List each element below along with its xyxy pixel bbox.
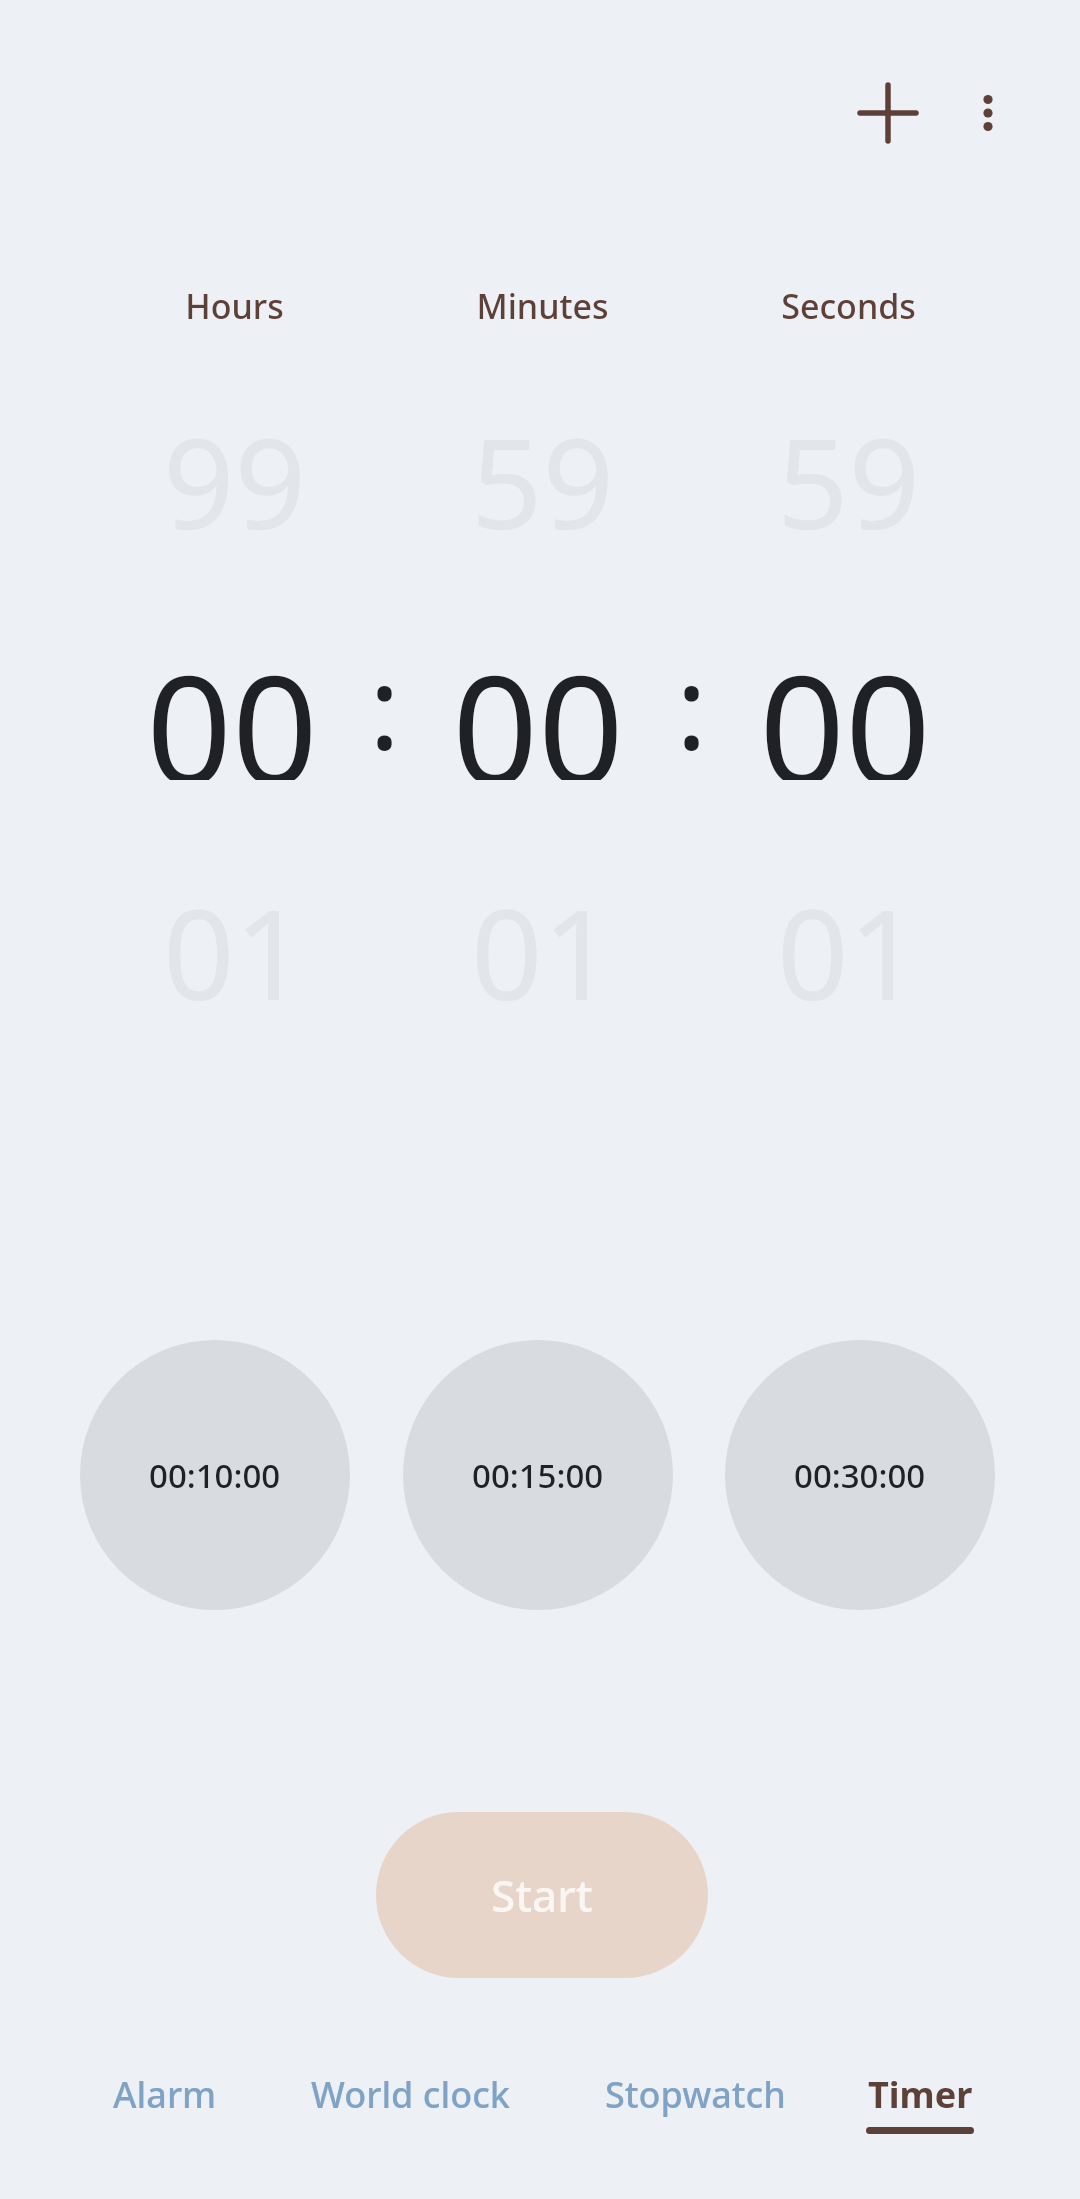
staticText: : [676, 625, 708, 780]
staticText: 00:10:00 [149, 1453, 281, 1498]
button[interactable]: 00 [695, 625, 995, 780]
staticText: 00:30:00 [794, 1453, 926, 1498]
button[interactable]: 59 [698, 395, 998, 545]
button[interactable]: More options [944, 69, 1032, 157]
staticText: Hours [185, 283, 284, 329]
staticText: 00:15:00 [472, 1453, 604, 1498]
button[interactable]: 99 [84, 395, 384, 545]
button[interactable]: Alarm [35, 2070, 295, 2170]
button[interactable]: 00 [82, 625, 382, 780]
staticText: 99 [163, 395, 306, 545]
button[interactable]: Start [376, 1812, 708, 1978]
staticText: 00 [759, 625, 931, 780]
staticText: 01 [777, 866, 920, 1016]
staticText: Stopwatch [605, 2070, 786, 2119]
button[interactable]: World clock [280, 2070, 540, 2170]
staticText: Timer [868, 2070, 973, 2119]
staticText: 59 [471, 395, 614, 545]
staticText: Minutes [476, 283, 609, 329]
staticText: 01 [471, 866, 614, 1016]
button[interactable]: 59 [392, 395, 692, 545]
button[interactable]: Stopwatch [565, 2070, 825, 2170]
staticText: 00 [146, 625, 318, 780]
staticText: World clock [311, 2070, 510, 2119]
staticText: : [369, 625, 401, 780]
button[interactable]: 00:30:00 [725, 1340, 995, 1610]
button[interactable]: Add timer [844, 69, 932, 157]
button[interactable]: 00:15:00 [403, 1340, 673, 1610]
staticText: 01 [163, 866, 306, 1016]
staticText: 00 [452, 625, 624, 780]
staticText: Alarm [113, 2070, 217, 2119]
button[interactable]: Timer [790, 2070, 1050, 2170]
button[interactable]: 00:10:00 [80, 1340, 350, 1610]
staticText: Seconds [781, 283, 916, 329]
staticText: 59 [777, 395, 920, 545]
staticText: Start [491, 1865, 593, 1925]
button[interactable]: 00 [388, 625, 688, 780]
